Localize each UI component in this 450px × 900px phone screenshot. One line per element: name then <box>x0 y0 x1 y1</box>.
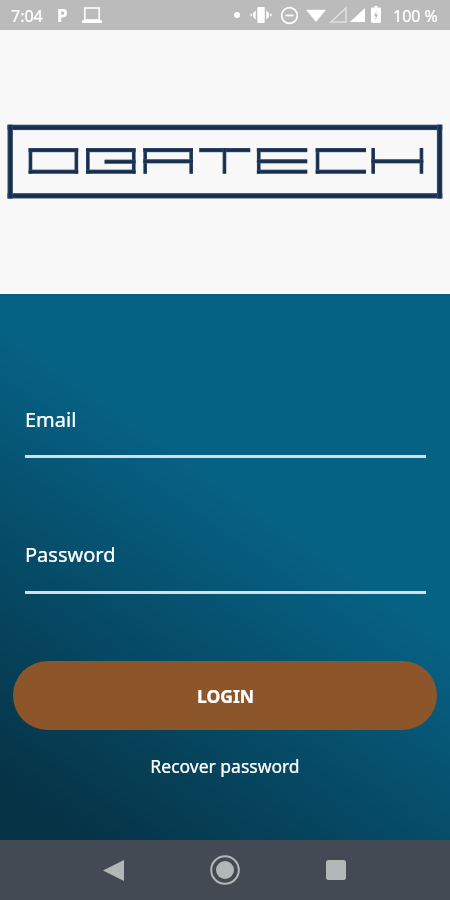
staticText: 7:04 <box>11 5 43 27</box>
button[interactable]: Home <box>197 846 253 894</box>
staticText: Email <box>25 406 77 433</box>
staticText: Recover password <box>150 754 300 778</box>
staticText: Password <box>25 541 116 568</box>
staticText: LOGIN <box>197 684 254 708</box>
button[interactable]: LOGIN <box>13 661 437 730</box>
button[interactable]: Back <box>85 846 141 894</box>
button[interactable]: Recover password <box>0 753 450 779</box>
button[interactable]: Recent apps <box>308 846 364 894</box>
staticText: 100 % <box>393 5 438 27</box>
staticText: P <box>57 4 68 27</box>
